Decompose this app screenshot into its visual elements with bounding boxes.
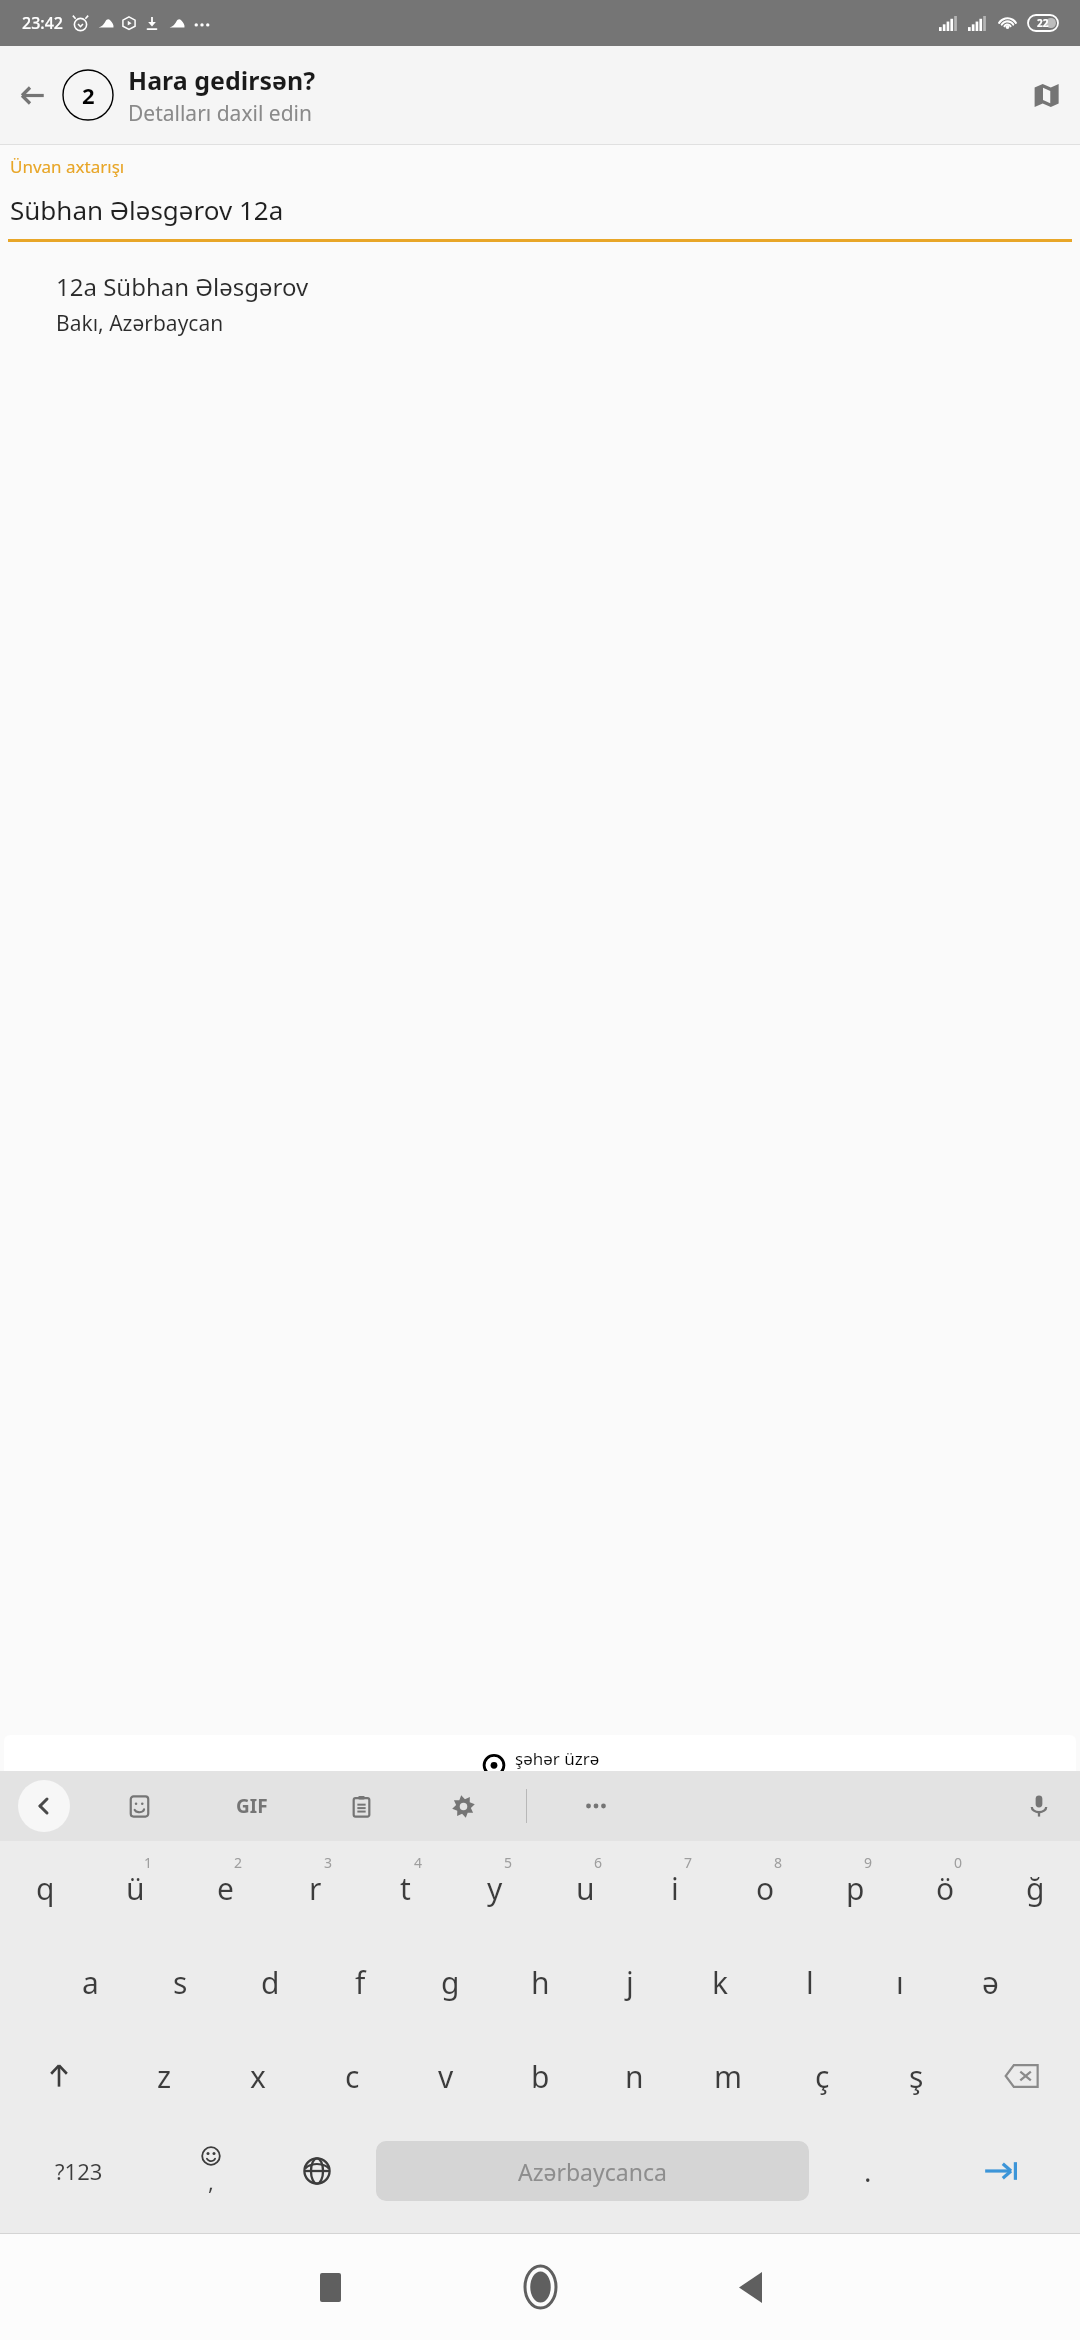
- staticText: Ünvan axtarışı: [10, 155, 125, 178]
- staticText: g: [441, 1962, 460, 2003]
- button[interactable]: Change language: [264, 2123, 370, 2219]
- button[interactable]: Shift: [0, 2029, 117, 2123]
- button[interactable]: t: [360, 1841, 450, 1935]
- staticText: .: [864, 2152, 872, 2190]
- button[interactable]: c: [305, 2029, 399, 2123]
- staticText: k: [712, 1962, 729, 2003]
- staticText: r: [309, 1868, 322, 1909]
- button[interactable]: j: [585, 1935, 675, 2029]
- button[interactable]: şəhər üzrə: [4, 1735, 1076, 1771]
- button[interactable]: i: [630, 1841, 720, 1935]
- button[interactable]: o: [720, 1841, 810, 1935]
- staticText: Azərbaycanca: [518, 2156, 667, 2187]
- staticText: ç: [815, 2056, 830, 2097]
- staticText: Bakı, Azərbaycan: [56, 309, 224, 338]
- button[interactable]: Clipboard: [338, 1783, 384, 1829]
- button[interactable]: ü: [90, 1841, 180, 1935]
- button[interactable]: k: [675, 1935, 765, 2029]
- staticText: o: [756, 1868, 775, 1909]
- button[interactable]: n: [587, 2029, 681, 2123]
- button[interactable]: Map: [1020, 69, 1072, 121]
- staticText: e: [217, 1868, 234, 1909]
- button[interactable]: h: [495, 1935, 585, 2029]
- staticText: n: [625, 2056, 644, 2097]
- staticText: p: [846, 1868, 865, 1909]
- button[interactable]: y: [450, 1841, 540, 1935]
- button[interactable]: Back: [707, 2244, 793, 2330]
- staticText: ö: [936, 1868, 955, 1909]
- button[interactable]: Back: [8, 71, 56, 119]
- staticText: m: [714, 2056, 743, 2097]
- button[interactable]: r: [270, 1841, 360, 1935]
- staticText: ə: [982, 1962, 999, 2003]
- button[interactable]: 12a Sübhan Ələsgərov: [0, 268, 1080, 348]
- button[interactable]: Period: [815, 2123, 921, 2219]
- button[interactable]: Home: [497, 2244, 583, 2330]
- button[interactable]: GIF: [222, 1783, 282, 1829]
- staticText: 3: [324, 1853, 333, 1872]
- button[interactable]: s: [135, 1935, 225, 2029]
- button[interactable]: g: [405, 1935, 495, 2029]
- staticText: şəhər üzrə: [515, 1747, 600, 1770]
- button[interactable]: Stickers: [116, 1783, 162, 1829]
- staticText: 4: [414, 1853, 423, 1872]
- staticText: Sübhan Ələsgərov 12a: [10, 192, 284, 227]
- button[interactable]: Next: [921, 2123, 1080, 2219]
- button[interactable]: ğ: [990, 1841, 1080, 1935]
- staticText: a: [82, 1962, 99, 2003]
- button[interactable]: x: [211, 2029, 305, 2123]
- button[interactable]: ş: [869, 2029, 963, 2123]
- button[interactable]: a: [45, 1935, 135, 2029]
- button[interactable]: Sübhan Ələsgərov 12a: [0, 192, 1080, 227]
- staticText: 2: [234, 1853, 243, 1872]
- staticText: ?123: [55, 2156, 103, 2186]
- button[interactable]: e: [180, 1841, 270, 1935]
- button[interactable]: Collapse toolbar: [18, 1780, 70, 1832]
- button[interactable]: ö: [900, 1841, 990, 1935]
- button[interactable]: u: [540, 1841, 630, 1935]
- button[interactable]: f: [315, 1935, 405, 2029]
- staticText: y: [487, 1868, 503, 1909]
- staticText: v: [438, 2056, 454, 2097]
- staticText: 12a Sübhan Ələsgərov: [56, 270, 309, 303]
- staticText: j: [626, 1962, 634, 2003]
- staticText: u: [576, 1868, 595, 1909]
- staticText: t: [400, 1868, 411, 1909]
- staticText: 8: [774, 1853, 783, 1872]
- button[interactable]: Emoji: [158, 2123, 264, 2219]
- button[interactable]: 2: [62, 69, 114, 121]
- staticText: 2: [82, 80, 95, 110]
- button[interactable]: p: [810, 1841, 900, 1935]
- staticText: ,: [208, 2166, 214, 2196]
- button[interactable]: Voice input: [1016, 1783, 1062, 1829]
- button[interactable]: ə: [945, 1935, 1035, 2029]
- button[interactable]: b: [493, 2029, 587, 2123]
- button[interactable]: Recent apps: [287, 2244, 373, 2330]
- button[interactable]: More options: [573, 1783, 619, 1829]
- staticText: GIF: [236, 1793, 268, 1819]
- button[interactable]: m: [681, 2029, 775, 2123]
- button[interactable]: Symbols: [0, 2123, 158, 2219]
- button[interactable]: v: [399, 2029, 493, 2123]
- button[interactable]: Azərbaycanca: [376, 2141, 809, 2201]
- button[interactable]: ı: [855, 1935, 945, 2029]
- button[interactable]: Keyboard settings: [440, 1783, 486, 1829]
- staticText: b: [531, 2056, 550, 2097]
- staticText: z: [157, 2056, 172, 2097]
- staticText: ş: [909, 2056, 924, 2097]
- staticText: h: [531, 1962, 550, 2003]
- button[interactable]: ç: [775, 2029, 869, 2123]
- button[interactable]: Backspace: [963, 2029, 1080, 2123]
- button[interactable]: l: [765, 1935, 855, 2029]
- staticText: 6: [594, 1853, 603, 1872]
- staticText: s: [173, 1962, 188, 2003]
- button[interactable]: z: [117, 2029, 211, 2123]
- button[interactable]: d: [225, 1935, 315, 2029]
- staticText: l: [806, 1962, 814, 2003]
- staticText: d: [261, 1962, 280, 2003]
- staticText: ü: [126, 1868, 145, 1909]
- staticText: c: [345, 2056, 360, 2097]
- button[interactable]: q: [0, 1841, 90, 1935]
- staticText: 9: [864, 1853, 873, 1872]
- staticText: ğ: [1026, 1868, 1045, 1909]
